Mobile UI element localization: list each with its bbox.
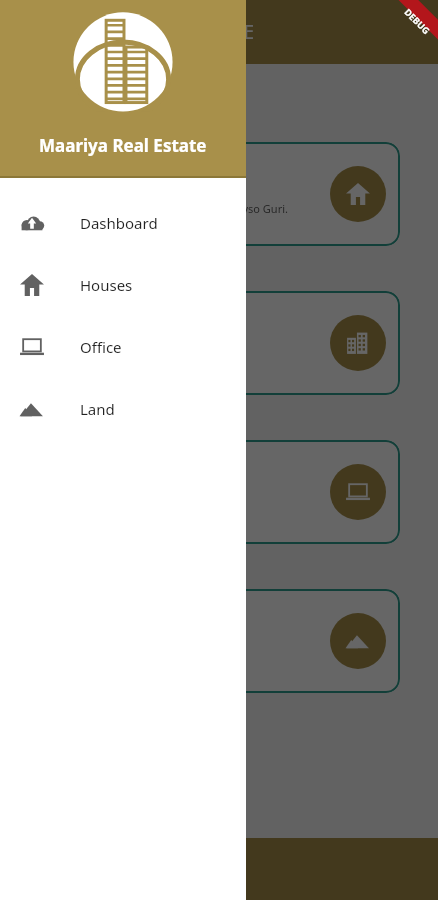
button[interactable]: Account (174, 841, 264, 897)
button[interactable]: Xafiis (38, 440, 400, 544)
button[interactable]: Land (0, 378, 246, 440)
staticText: Dashboard (80, 213, 158, 233)
staticText: Land (80, 399, 115, 419)
button[interactable]: Dashboard (0, 192, 246, 254)
staticText: Guryaha la kireeyo/Ibso ... (52, 350, 187, 365)
button[interactable]: Guryo la kiraynayso ... (38, 291, 400, 395)
button[interactable]: Houses (0, 254, 246, 316)
button[interactable]: Guryo la iibinayso ... (38, 142, 400, 246)
staticText: Houses (80, 275, 133, 295)
staticText: Guryo la kiraynayso ... (52, 321, 239, 344)
button[interactable] (0, 0, 438, 900)
staticText: MAARIYA REAL ESTATE (56, 19, 255, 45)
staticText: Guryo la iibinayso ... (52, 172, 223, 195)
staticText: Guryo kala duwan / Guryaha la iibinayso … (52, 201, 288, 216)
staticText: DEBUG (402, 6, 433, 36)
staticText: Office (80, 337, 122, 357)
button[interactable]: Office (0, 316, 246, 378)
staticText: Maariya Real Estate (39, 134, 207, 157)
button[interactable]: Dhul (38, 589, 400, 693)
